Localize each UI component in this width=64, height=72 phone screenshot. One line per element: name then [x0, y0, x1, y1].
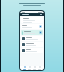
button[interactable]: Home [22, 66, 27, 70]
button[interactable]: Library [32, 66, 37, 70]
button[interactable] [20, 13, 44, 16]
button[interactable]: Search [27, 66, 32, 70]
button[interactable]: Open item [39, 31, 42, 34]
button[interactable]: Profile [37, 66, 42, 70]
button[interactable]: Open item [39, 25, 42, 28]
button[interactable] [21, 42, 43, 47]
button[interactable] [21, 36, 43, 41]
button[interactable] [21, 17, 43, 23]
button[interactable]: Open item [21, 30, 43, 35]
button[interactable]: Open item [21, 24, 43, 29]
button[interactable] [21, 48, 43, 53]
